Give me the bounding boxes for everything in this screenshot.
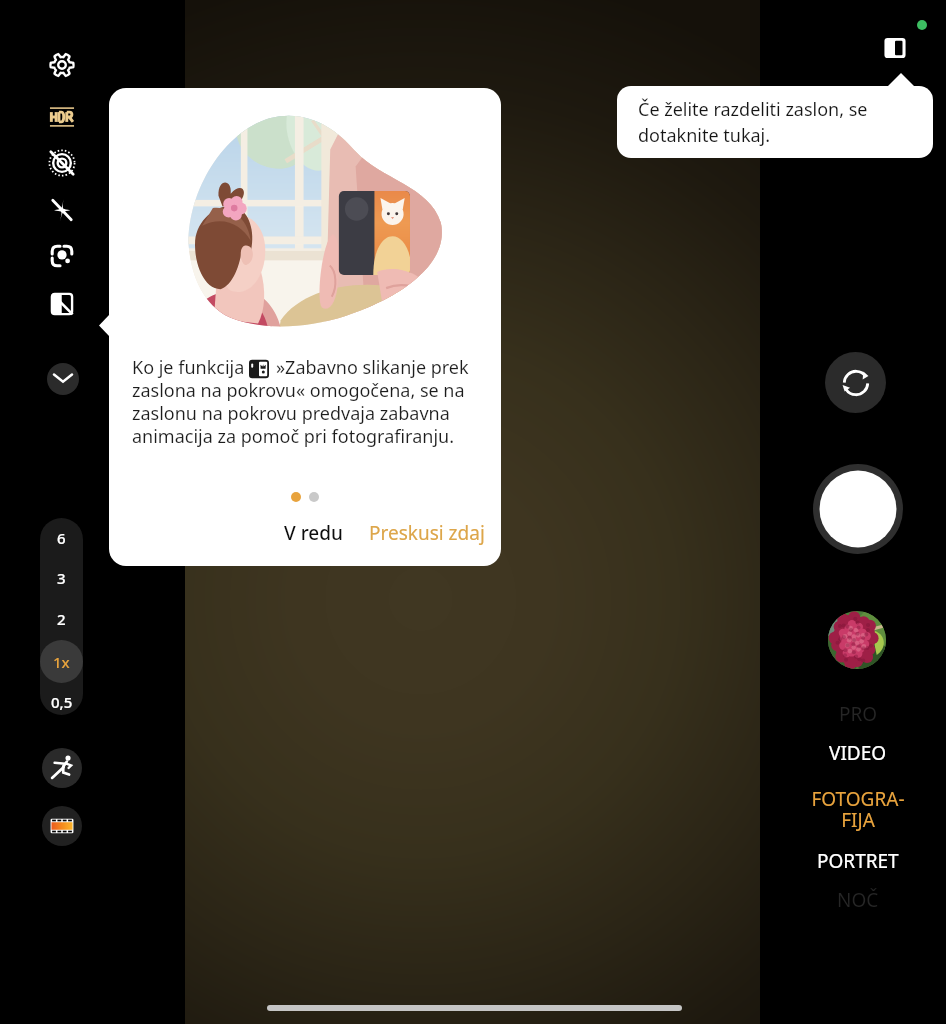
staticText: 6 xyxy=(57,528,66,548)
button[interactable]: Filters xyxy=(42,806,82,846)
button[interactable]: FOTOGRA- FIJA xyxy=(765,776,946,842)
button[interactable]: Cover screen preview off xyxy=(40,282,84,326)
button[interactable]: V redu xyxy=(270,513,357,553)
button[interactable]: Gallery xyxy=(828,611,886,669)
button[interactable]: Preskusi zdaj xyxy=(355,513,499,553)
button[interactable]: Take photo xyxy=(813,464,903,554)
staticText: Preskusi zdaj xyxy=(369,520,485,546)
staticText: VIDEO xyxy=(829,740,887,766)
button[interactable]: Scene optimizer xyxy=(40,234,84,278)
button[interactable]: PRO xyxy=(765,700,946,728)
button[interactable]: 3 xyxy=(40,556,83,599)
staticText: 3 xyxy=(57,568,66,588)
button[interactable]: PORTRET xyxy=(765,847,946,875)
staticText: PORTRET xyxy=(817,848,899,874)
button[interactable]: Switch camera xyxy=(825,352,886,413)
button[interactable]: Motion photo off xyxy=(40,141,84,185)
button[interactable]: Če želite razdeliti zaslon, se dotaknite… xyxy=(617,86,933,158)
button[interactable]: Settings xyxy=(40,43,84,87)
button[interactable]: Flash off xyxy=(40,188,84,232)
button[interactable]: HDR xyxy=(40,95,84,139)
staticText: Ko je funkcija »Zabavno slikanje prek za… xyxy=(132,355,482,448)
button[interactable]: 6 xyxy=(40,518,83,559)
staticText: FOTOGRA- FIJA xyxy=(811,786,905,833)
button[interactable]: NOČ xyxy=(765,886,946,914)
button[interactable]: More options xyxy=(47,363,79,395)
staticText: V redu xyxy=(284,520,343,546)
staticText: PRO xyxy=(839,701,878,727)
button[interactable]: 1x xyxy=(40,640,83,683)
button[interactable]: 2 xyxy=(40,597,83,640)
staticText: NOČ xyxy=(837,887,879,913)
button[interactable]: Split screen xyxy=(878,31,912,65)
button[interactable]: VIDEO xyxy=(765,739,946,767)
staticText: 0,5 xyxy=(51,692,73,712)
button[interactable]: 0,5 xyxy=(40,680,83,715)
staticText: 2 xyxy=(57,609,66,629)
staticText: Če želite razdeliti zaslon, se dotaknite… xyxy=(638,97,917,148)
button[interactable]: Motion xyxy=(42,748,82,788)
staticText: 1x xyxy=(53,652,70,672)
